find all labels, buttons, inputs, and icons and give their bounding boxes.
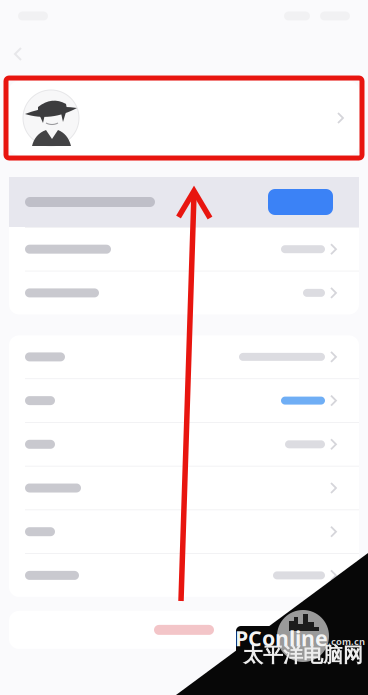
button[interactable] [9,379,359,422]
button[interactable] [9,228,359,271]
button[interactable] [9,335,359,378]
button[interactable]: Back [0,32,38,76]
button[interactable] [0,597,368,649]
button[interactable] [9,554,359,597]
button[interactable] [9,510,359,553]
button[interactable] [9,177,359,227]
button[interactable] [9,423,359,466]
button[interactable] [9,466,359,509]
button[interactable] [9,271,359,314]
staticText: 太平洋电脑网 [243,643,363,667]
staticText: PConline [235,624,328,652]
staticText: .com.cn [328,635,365,648]
button[interactable] [0,76,368,160]
